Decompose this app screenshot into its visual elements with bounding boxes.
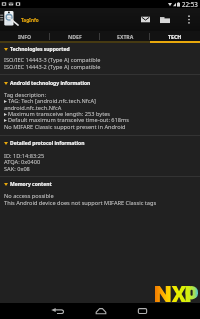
staticText: Tag description:	[4, 91, 46, 99]
button[interactable]: Open file	[153, 8, 177, 31]
button[interactable]: NDEF	[50, 31, 100, 41]
button[interactable]: Navigate up	[0, 8, 21, 31]
staticText: INFO	[18, 33, 32, 40]
staticText: ATQA: 0x0400	[4, 158, 41, 166]
staticText: 22:53	[182, 0, 198, 8]
button[interactable]: More options	[179, 8, 199, 31]
staticText: Detailed protocol information	[10, 140, 85, 147]
staticText: ID: 1D:14:83:25	[4, 152, 45, 160]
staticText: Default maximum transceive time-out: 618…	[8, 116, 130, 124]
button[interactable]: Back	[37, 303, 77, 319]
staticText: Memory content	[10, 181, 52, 188]
staticText: Maximum transceive length: 253 bytes	[8, 110, 111, 118]
button[interactable]: EXTRA	[100, 31, 150, 41]
staticText: NDEF	[68, 33, 82, 40]
button[interactable]: TECH	[150, 31, 200, 41]
staticText: android.nfc.tech.NfcA	[4, 104, 62, 112]
staticText: ISO/IEC 14443-2 (Type A) compatible	[4, 63, 101, 71]
staticText: Technologies supported	[10, 46, 70, 53]
button[interactable]: Detailed protocol information	[0, 138, 200, 148]
staticText: Android technology information	[10, 80, 91, 87]
staticText: TagInfo	[21, 17, 39, 23]
button[interactable]: Technologies supported	[0, 44, 200, 54]
staticText: TECH	[168, 33, 182, 40]
button[interactable]: Home	[81, 303, 121, 319]
staticText: No MIFARE Classic support present in And…	[4, 123, 126, 131]
staticText: EXTRA	[117, 33, 134, 40]
button[interactable]: Recent apps	[122, 303, 162, 319]
staticText: No access possible	[4, 192, 54, 200]
staticText: ISO/IEC 14443-3 (Type A) compatible	[4, 56, 101, 64]
button[interactable]: Android technology information	[0, 78, 200, 88]
button[interactable]: Memory content	[0, 179, 200, 189]
staticText: This Android device does not support MIF…	[4, 199, 157, 207]
staticText: SAK: 0x08	[4, 165, 30, 173]
staticText: TAG: Tech [android.nfc.tech.NfcA]	[8, 97, 96, 105]
button[interactable]: INFO	[0, 31, 50, 41]
button[interactable]: Mail	[133, 8, 157, 31]
